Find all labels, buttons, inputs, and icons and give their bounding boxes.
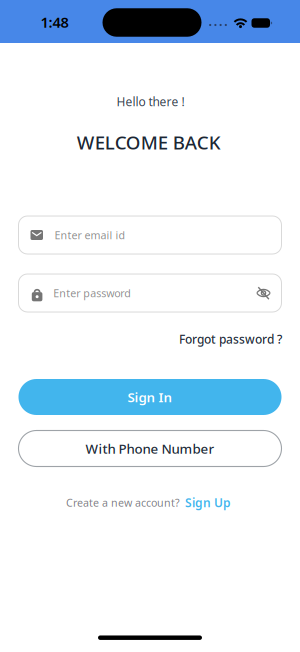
staticText: Enter email id (54, 228, 125, 242)
staticText: 1:48 (40, 12, 68, 32)
button[interactable]: Enter email id (18, 216, 281, 254)
button[interactable]: Sign In (18, 379, 281, 415)
button[interactable]: Enter password (18, 274, 281, 312)
staticText: Forgot password ? (179, 331, 282, 347)
staticText: Hello there ! (116, 93, 184, 109)
button[interactable]: Forgot password ? (179, 331, 282, 347)
staticText: Sign Up (185, 494, 231, 510)
staticText: Enter password (53, 286, 131, 300)
button[interactable]: Sign Up (185, 494, 231, 510)
staticText: Sign In (127, 388, 172, 406)
button[interactable]: Show password (256, 287, 270, 299)
button[interactable]: With Phone Number (18, 430, 281, 466)
staticText: Create a new account? (66, 495, 180, 510)
staticText: With Phone Number (85, 440, 214, 457)
staticText: WELCOME BACK (77, 130, 221, 155)
